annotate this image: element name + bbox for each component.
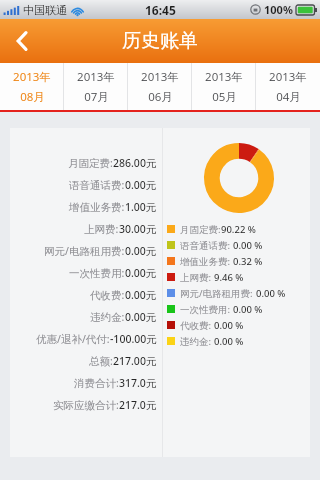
staticText: 2013年: [205, 69, 243, 85]
staticText: 2013年: [77, 69, 115, 85]
staticText: 增值业务费:: [69, 200, 125, 214]
staticText: 代收费:: [90, 288, 125, 302]
staticText: 04月: [276, 89, 301, 105]
staticText: 历史账单: [122, 29, 198, 53]
staticText: 0.00 %: [214, 335, 244, 348]
staticText: 0.00元: [125, 244, 157, 258]
staticText: 上网费:: [180, 271, 214, 284]
staticText: 217.0元: [119, 398, 157, 412]
staticText: 0.00元: [125, 178, 157, 192]
staticText: 优惠/退补/代付:: [36, 332, 110, 346]
staticText: 代收费:: [180, 319, 214, 332]
staticText: 2013年: [269, 69, 307, 85]
button[interactable]: 2013年: [128, 63, 192, 110]
staticText: 网元/电路租用费:: [180, 287, 256, 300]
staticText: -100.00元: [110, 332, 157, 346]
staticText: 一次性费用:: [69, 266, 125, 280]
staticText: 0.00 %: [233, 303, 263, 316]
staticText: 月固定费:: [68, 156, 113, 170]
staticText: 0.00 %: [214, 319, 244, 332]
staticText: 06月: [148, 89, 173, 105]
staticText: 0.00元: [125, 310, 157, 324]
staticText: 总额:: [89, 354, 113, 368]
staticText: 08月: [20, 89, 45, 105]
staticText: 0.00 %: [256, 287, 286, 300]
staticText: 2013年: [13, 69, 51, 85]
staticText: 0.32 %: [233, 255, 263, 268]
staticText: 语音通话费:: [69, 178, 125, 192]
staticText: 1.00元: [125, 200, 157, 214]
staticText: 月固定费:: [180, 223, 221, 236]
staticText: 05月: [212, 89, 237, 105]
button[interactable]: 返回: [0, 19, 44, 63]
staticText: 2013年: [141, 69, 179, 85]
button[interactable]: 2013年: [192, 63, 256, 110]
staticText: 增值业务费:: [180, 255, 233, 268]
button[interactable]: 2013年: [256, 63, 320, 110]
staticText: 一次性费用:: [180, 303, 233, 316]
staticText: 网元/电路租用费:: [44, 244, 125, 258]
staticText: 中国联通: [23, 3, 67, 17]
staticText: 0.00元: [125, 288, 157, 302]
staticText: 100%: [264, 2, 293, 17]
staticText: 286.00元: [113, 156, 157, 170]
staticText: 07月: [84, 89, 109, 105]
staticText: 上网费:: [84, 222, 119, 236]
staticText: 9.46 %: [214, 271, 244, 284]
button[interactable]: 2013年: [0, 63, 64, 110]
button[interactable]: 2013年: [64, 63, 128, 110]
staticText: 实际应缴合计:: [53, 398, 119, 412]
staticText: 0.00 %: [233, 239, 263, 252]
staticText: 违约金:: [90, 310, 125, 324]
staticText: 消费合计:: [74, 376, 119, 390]
staticText: 317.0元: [119, 376, 157, 390]
staticText: 30.00元: [119, 222, 157, 236]
staticText: 0.00元: [125, 266, 157, 280]
staticText: 217.00元: [113, 354, 157, 368]
staticText: 语音通话费:: [180, 239, 233, 252]
staticText: 90.22 %: [221, 223, 256, 236]
staticText: 违约金:: [180, 335, 214, 348]
staticText: 16:45: [145, 2, 176, 18]
